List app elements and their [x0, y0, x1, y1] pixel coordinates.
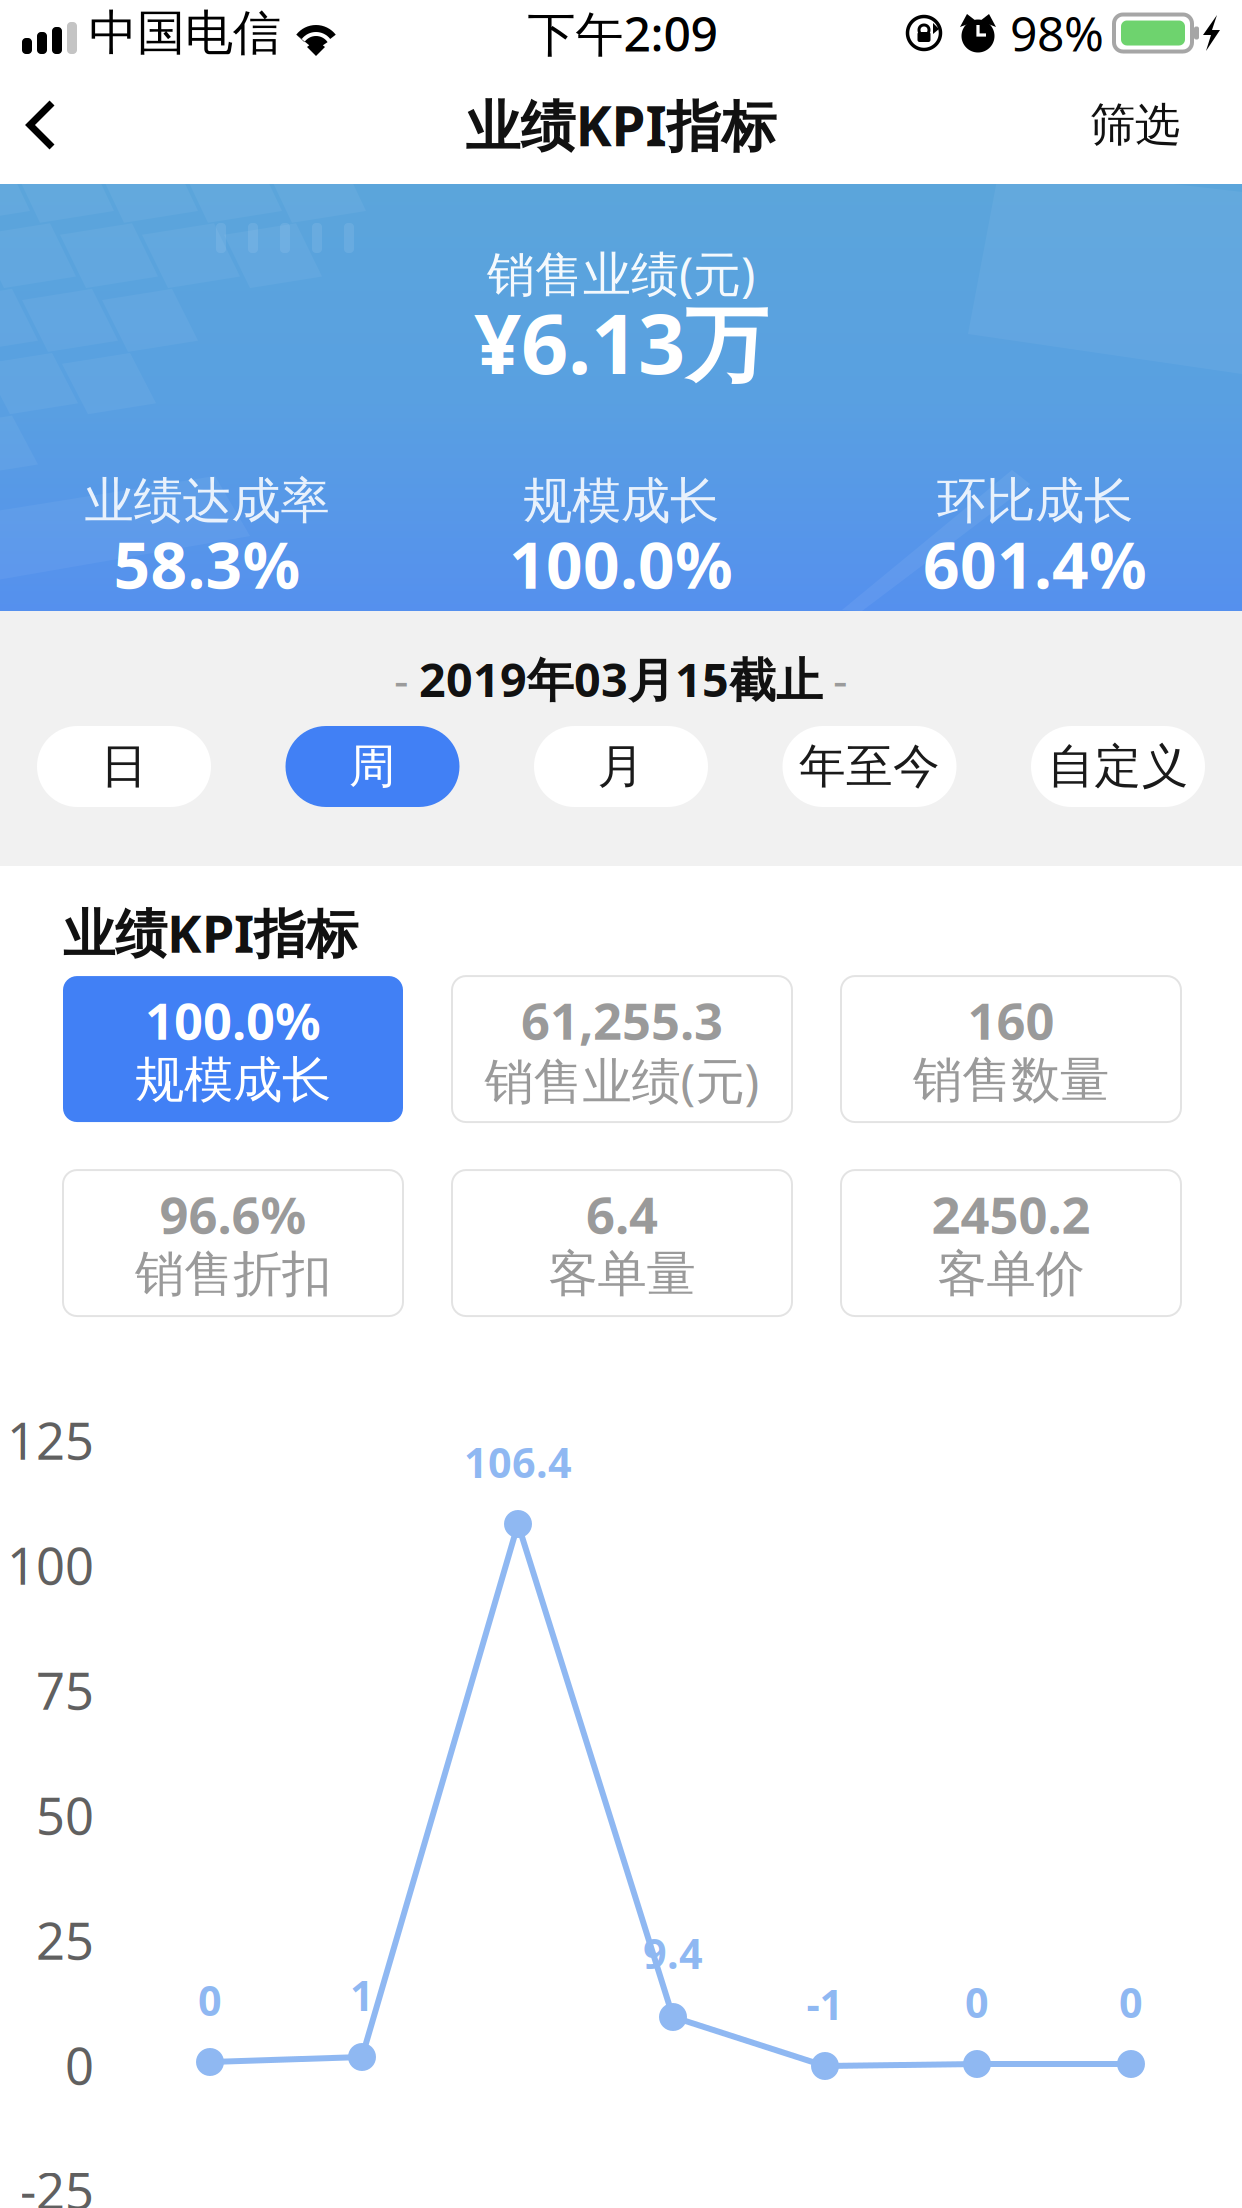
staticText: 61,255.3	[521, 986, 723, 1054]
staticText: 筛选	[1090, 97, 1180, 153]
staticText: 0	[965, 1975, 989, 2029]
button[interactable]: 日	[37, 726, 211, 807]
staticText: 业绩达成率	[84, 471, 329, 531]
button[interactable]: 100.0%	[63, 976, 403, 1122]
button[interactable]: 年至今	[782, 726, 956, 807]
staticText: 规模成长	[523, 471, 719, 531]
button[interactable]: 6.4	[452, 1170, 792, 1316]
staticText: 9.4	[643, 1926, 703, 1980]
staticText: 106.4	[464, 1435, 572, 1489]
staticText: 1	[350, 1968, 374, 2022]
staticText: 0	[65, 2031, 94, 2099]
staticText: 客单量	[548, 1244, 695, 1304]
staticText: ¥6.13万	[474, 287, 768, 397]
staticText: 中国电信	[89, 3, 281, 62]
staticText: 下午2:09	[527, 1, 717, 65]
staticText: 0	[1119, 1975, 1143, 2029]
staticText: -	[833, 649, 848, 709]
button[interactable]: Back	[0, 66, 96, 184]
staticText: 601.4%	[923, 521, 1147, 606]
button[interactable]: 自定义	[1031, 726, 1205, 807]
button[interactable]: 2450.2	[841, 1170, 1181, 1316]
button[interactable]: 96.6%	[63, 1170, 403, 1316]
staticText: 96.6%	[159, 1180, 306, 1248]
staticText: 周	[349, 738, 396, 795]
button[interactable]: 月	[534, 726, 708, 807]
button[interactable]: 61,255.3	[452, 976, 792, 1122]
staticText: 销售业绩(元)	[484, 1047, 759, 1113]
staticText: 25	[36, 1906, 94, 1974]
staticText: 75	[36, 1656, 94, 1724]
staticText: 销售折扣	[135, 1244, 331, 1304]
staticText: 100.0%	[145, 986, 321, 1054]
staticText: 日	[100, 738, 147, 795]
staticText: 业绩KPI指标	[465, 89, 776, 161]
staticText: 98%	[1010, 1, 1104, 65]
staticText: -25	[20, 2156, 94, 2208]
staticText: 自定义	[1047, 738, 1188, 795]
staticText: 销售数量	[913, 1050, 1109, 1110]
staticText: 0	[198, 1973, 222, 2027]
button[interactable]: 160	[841, 976, 1181, 1122]
staticText: 6.4	[586, 1180, 658, 1248]
staticText: 58.3%	[113, 521, 300, 606]
staticText: 规模成长	[135, 1050, 331, 1110]
staticText: 50	[36, 1781, 94, 1849]
staticText: 年至今	[799, 738, 940, 795]
staticText: 2450.2	[931, 1180, 1090, 1248]
staticText: 月	[597, 738, 644, 795]
button[interactable]: 筛选	[1090, 66, 1242, 184]
staticText: 160	[967, 986, 1054, 1054]
staticText: 销售业绩(元)	[487, 241, 755, 305]
button[interactable]: 周	[285, 726, 459, 807]
staticText: 环比成长	[937, 471, 1133, 531]
staticText: 客单价	[937, 1244, 1084, 1304]
staticText: 125	[7, 1406, 94, 1474]
staticText: 2019年03月15截止	[419, 648, 823, 710]
staticText: 100	[7, 1531, 94, 1599]
staticText: 100.0%	[509, 521, 733, 606]
staticText: 业绩KPI指标	[63, 898, 358, 967]
staticText: -1	[806, 1977, 843, 2031]
staticText: -	[394, 649, 409, 709]
